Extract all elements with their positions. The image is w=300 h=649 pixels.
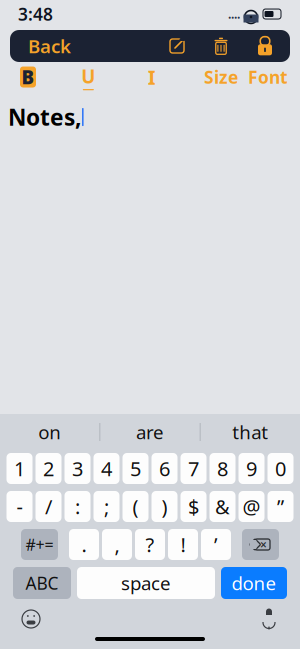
staticText: that	[232, 420, 268, 444]
button[interactable]: 5	[122, 453, 148, 484]
staticText: ”	[277, 493, 284, 520]
staticText: ABC	[25, 571, 58, 594]
staticText: 2	[43, 455, 54, 482]
staticText: ’	[214, 531, 218, 558]
button[interactable]: (	[122, 491, 148, 522]
button[interactable]: :	[64, 491, 90, 522]
button[interactable]: 2	[35, 453, 61, 484]
staticText: 9	[246, 455, 257, 482]
button[interactable]: I	[141, 66, 163, 88]
staticText: 6	[159, 455, 170, 482]
staticText: 7	[188, 455, 199, 482]
staticText: are	[136, 420, 164, 444]
staticText: U	[81, 64, 95, 89]
staticText: .	[81, 531, 86, 558]
button[interactable]: on	[0, 414, 99, 450]
button[interactable]: )	[151, 491, 177, 522]
staticText: ,	[114, 531, 119, 558]
staticText: ?	[145, 531, 154, 558]
staticText: 4	[101, 455, 112, 482]
button[interactable]: ’	[201, 529, 231, 560]
button[interactable]: ”	[267, 491, 293, 522]
button[interactable]: ABC	[13, 567, 71, 599]
button[interactable]: $	[180, 491, 206, 522]
staticText: )	[161, 493, 167, 520]
staticText: I	[148, 64, 156, 90]
staticText: 3:48	[18, 2, 53, 25]
button[interactable]: space	[77, 567, 215, 599]
button[interactable]: are	[100, 414, 200, 450]
button[interactable]: Lock	[254, 34, 276, 58]
staticText: 1	[14, 455, 25, 482]
button[interactable]: Font	[248, 65, 288, 88]
button[interactable]: ,	[102, 529, 132, 560]
staticText: @	[242, 493, 260, 520]
button[interactable]: Compose	[166, 35, 188, 57]
button[interactable]: 1	[6, 453, 32, 484]
staticText: :	[75, 493, 80, 520]
staticText: 8	[217, 455, 228, 482]
button[interactable]: 8	[209, 453, 235, 484]
staticText: ....	[228, 6, 240, 22]
button[interactable]: 0	[267, 453, 293, 484]
button[interactable]: #+=	[21, 529, 58, 560]
button[interactable]: -	[6, 491, 32, 522]
staticText: B	[21, 65, 34, 89]
button[interactable]: ?	[135, 529, 165, 560]
button[interactable]: that	[200, 414, 300, 450]
staticText: $	[188, 493, 199, 520]
staticText: (	[132, 493, 138, 520]
staticText: -	[16, 493, 22, 520]
button[interactable]: 6	[151, 453, 177, 484]
button[interactable]: done	[221, 567, 287, 599]
staticText: 3	[72, 455, 83, 482]
button[interactable]: 4	[93, 453, 119, 484]
staticText: on	[38, 420, 61, 444]
staticText: 5	[130, 455, 141, 482]
button[interactable]: &	[209, 491, 235, 522]
staticText: !	[180, 531, 185, 558]
staticText: /	[45, 493, 52, 520]
staticText: Back	[28, 34, 71, 58]
staticText: Notes,	[8, 102, 81, 132]
staticText: &	[215, 493, 230, 520]
button[interactable]: 7	[180, 453, 206, 484]
button[interactable]: 3	[64, 453, 90, 484]
staticText: done	[231, 571, 276, 595]
staticText: Font	[248, 65, 288, 88]
button[interactable]: Back	[24, 28, 75, 64]
staticText: ×	[260, 536, 267, 552]
button[interactable]: B	[20, 66, 36, 87]
button[interactable]: Dictate	[254, 604, 284, 634]
button[interactable]: ;	[93, 491, 119, 522]
button[interactable]: /	[35, 491, 61, 522]
staticText: Size	[204, 65, 238, 88]
button[interactable]: @	[238, 491, 264, 522]
staticText: #+=	[25, 534, 53, 555]
staticText: space	[121, 571, 171, 595]
button[interactable]: Emoji	[16, 604, 46, 634]
staticText: ;	[104, 493, 109, 520]
button[interactable]: Delete	[210, 35, 232, 57]
button[interactable]: .	[69, 529, 99, 560]
button[interactable]: 9	[238, 453, 264, 484]
button[interactable]: Delete	[242, 529, 279, 560]
button[interactable]: Size	[204, 65, 238, 88]
staticText: 0	[275, 455, 286, 482]
button[interactable]: U	[77, 66, 99, 88]
button[interactable]: !	[168, 529, 198, 560]
